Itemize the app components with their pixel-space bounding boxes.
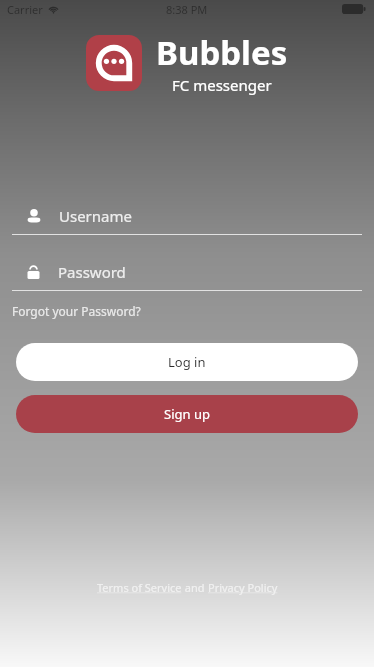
staticText: Forgot your Password? — [12, 303, 141, 319]
button[interactable]: Terms of Service — [97, 580, 182, 595]
other: Password — [26, 265, 41, 280]
button[interactable]: Privacy Policy — [208, 580, 278, 595]
staticText: and — [182, 580, 208, 595]
staticText: Log in — [168, 353, 206, 371]
staticText: Bubbles — [156, 30, 288, 75]
staticText: FC messenger — [172, 75, 272, 95]
button[interactable]: Username — [0, 200, 374, 234]
button[interactable]: Password — [0, 256, 374, 290]
staticText: Username — [59, 206, 132, 226]
staticText: 8:38 PM — [166, 2, 208, 17]
button[interactable]: Log in — [16, 343, 358, 381]
staticText: Terms of Service — [97, 580, 182, 595]
staticText: Carrier — [7, 2, 43, 17]
other: Bubbles logo — [86, 35, 142, 91]
staticText: Privacy Policy — [208, 580, 278, 595]
button[interactable]: Sign up — [16, 395, 358, 433]
other: Username — [26, 208, 42, 224]
staticText: Sign up — [164, 405, 210, 423]
button[interactable]: Forgot your Password? — [12, 301, 141, 321]
staticText: Password — [58, 262, 126, 282]
